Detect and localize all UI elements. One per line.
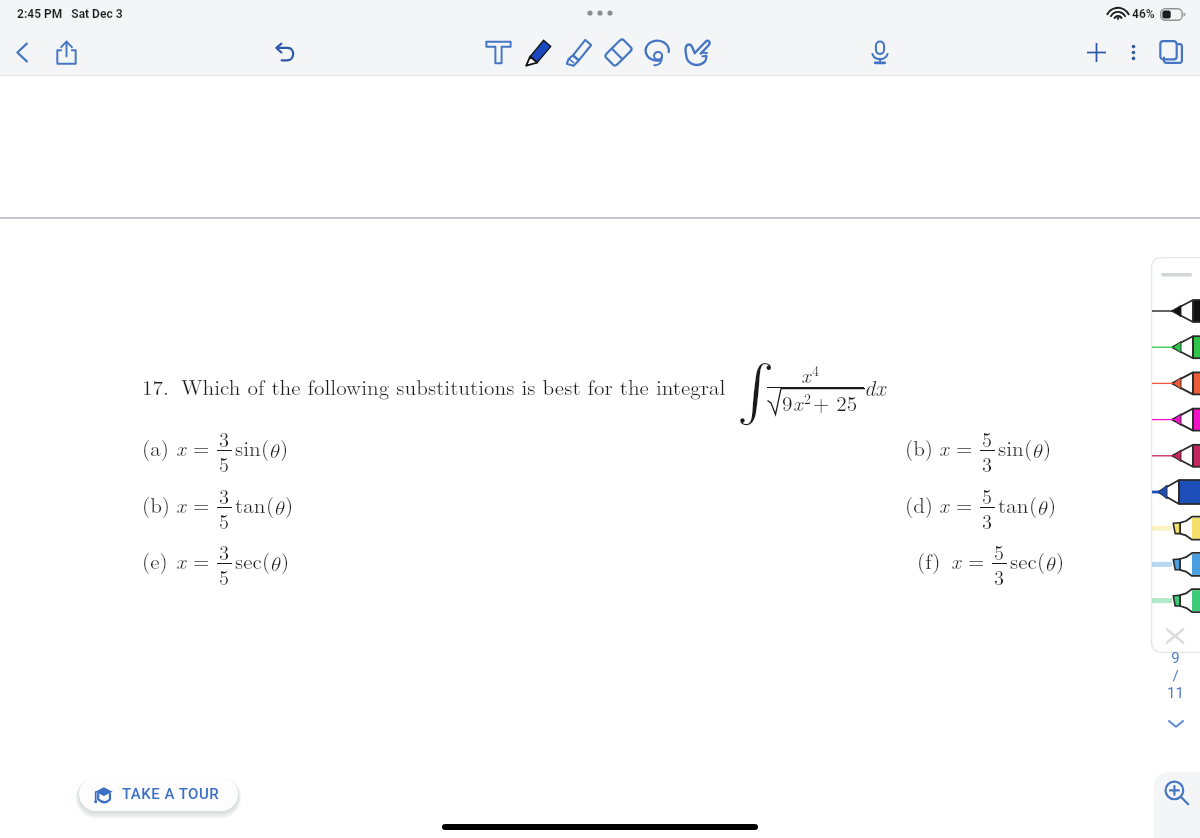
button[interactable]: Lasso tool [638, 33, 677, 72]
button[interactable]: Next page [1160, 710, 1192, 734]
staticText: (d) [905, 489, 934, 519]
button[interactable]: Zoom in [1154, 772, 1200, 838]
staticText: sin [235, 432, 261, 462]
button[interactable]: Highlighter tool [558, 32, 598, 72]
staticText: sec [1010, 545, 1037, 575]
staticText: ) [281, 545, 290, 575]
staticText: ( [262, 545, 271, 575]
staticText: 5 [219, 506, 229, 534]
staticText: 9 [1171, 649, 1180, 667]
staticText: 3 [219, 537, 229, 565]
staticText: (b) [142, 489, 171, 519]
staticText: 𝜃 [1046, 554, 1056, 575]
staticText: 46% [1132, 7, 1155, 21]
staticText: ) [280, 432, 289, 462]
staticText: ) [1043, 432, 1052, 462]
button[interactable]: Pages [1150, 31, 1192, 73]
staticText: 4 [812, 360, 819, 380]
staticText: 𝜃 [1033, 441, 1043, 462]
staticText: 5 [982, 424, 992, 452]
staticText: Which of the following substitutions is … [181, 371, 726, 401]
staticText: = [193, 545, 210, 575]
staticText: 𝜃 [271, 554, 281, 575]
staticText: sec [235, 545, 262, 575]
button[interactable]: TAKE A TOUR [79, 777, 238, 811]
staticText: 17. [142, 371, 169, 401]
staticText: x [939, 489, 949, 519]
staticText: x [176, 432, 186, 462]
staticText: 3 [219, 481, 229, 509]
staticText: tan [998, 489, 1029, 519]
staticText: ( [261, 432, 270, 462]
button[interactable]: Close pen tray [1162, 623, 1188, 649]
staticText: 5 [982, 481, 992, 509]
staticText: 5 [219, 449, 229, 477]
staticText: ) [1048, 489, 1057, 519]
staticText: ) [1056, 545, 1065, 575]
staticText: = [193, 489, 210, 519]
staticText: ) [285, 489, 294, 519]
staticText: 2 [804, 388, 811, 408]
staticText: dx [864, 371, 886, 402]
button[interactable]: Add [1076, 32, 1116, 72]
button[interactable]: Back [0, 30, 44, 74]
staticText: 5 [219, 562, 229, 590]
staticText: 11 [1167, 684, 1184, 702]
button[interactable]: More options [1116, 35, 1150, 69]
staticText: sin [998, 432, 1024, 462]
staticText: (b) [905, 432, 934, 462]
staticText: x [951, 545, 961, 575]
staticText: (a) [142, 432, 169, 462]
staticText: x [176, 489, 186, 519]
button[interactable]: Eraser tool [598, 32, 638, 72]
staticText: 3 [982, 506, 992, 534]
button[interactable]: Text tool [478, 32, 518, 72]
staticText: x [793, 387, 803, 417]
button[interactable]: Pen tool [518, 32, 558, 72]
staticText: (e) [142, 545, 168, 575]
staticText: 9 [782, 387, 793, 417]
staticText: x [939, 432, 949, 462]
staticText: / [1172, 667, 1179, 685]
staticText: = [193, 432, 210, 462]
staticText: ( [1029, 489, 1038, 519]
staticText: tan [235, 489, 266, 519]
staticText: x [176, 545, 186, 575]
button[interactable]: Record audio [858, 30, 902, 74]
staticText: 𝜃 [1038, 498, 1048, 519]
staticText: TAKE A TOUR [122, 785, 220, 803]
staticText: 𝜃 [275, 498, 285, 519]
staticText: 2:45 PM Sat Dec 3 [17, 7, 123, 21]
staticText: ( [266, 489, 275, 519]
button[interactable]: Share [44, 30, 88, 74]
staticText: 3 [219, 424, 229, 452]
staticText: 3 [994, 562, 1004, 590]
staticText: + 25 [813, 387, 858, 417]
staticText: (f) [917, 545, 941, 575]
staticText: ( [1037, 545, 1046, 575]
staticText: 𝜃 [270, 441, 280, 462]
staticText: 3 [982, 449, 992, 477]
button[interactable]: Hand tool [677, 32, 717, 72]
staticText: ∫ [737, 363, 775, 419]
staticText: = [956, 432, 973, 462]
staticText: 5 [994, 537, 1004, 565]
staticText: x [801, 359, 811, 389]
staticText: = [956, 489, 973, 519]
button[interactable]: Undo [263, 30, 307, 74]
staticText: ( [1024, 432, 1033, 462]
staticText: = [968, 545, 985, 575]
